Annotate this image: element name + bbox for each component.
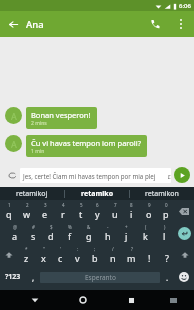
button[interactable]: Jes, certe! Ĉiam mi havas tempon por mia… [20, 168, 171, 183]
button[interactable]: 9 [140, 200, 157, 222]
button[interactable]: 5 [72, 200, 89, 222]
button[interactable]: Home [73, 290, 93, 310]
button[interactable]: : [69, 244, 86, 266]
button[interactable]: Backspace [174, 200, 194, 222]
staticText: retamikon [145, 189, 179, 199]
staticText: ) [164, 224, 166, 230]
staticText: w [23, 208, 31, 220]
staticText: y [95, 208, 100, 220]
button[interactable]: Call [142, 11, 168, 37]
button[interactable]: / [104, 244, 122, 266]
staticText: c [58, 252, 63, 264]
button[interactable]: Recents [121, 290, 141, 310]
staticText: e [42, 208, 48, 220]
staticText: * [25, 246, 28, 252]
button[interactable]: $ [42, 222, 60, 244]
button[interactable]: Bonan vesperon! [26, 107, 97, 129]
staticText: 7 [114, 202, 117, 208]
button[interactable]: " [35, 244, 52, 266]
staticText: l [163, 230, 166, 242]
button[interactable]: Back [0, 11, 26, 37]
staticText: 5 [80, 202, 83, 208]
button[interactable]: 1 [0, 200, 18, 222]
button[interactable]: ; [86, 244, 104, 266]
button[interactable]: 7 [106, 200, 123, 222]
button[interactable]: retamikon [130, 187, 194, 200]
staticText: t [79, 208, 83, 220]
button[interactable]: Space [40, 272, 160, 283]
staticText: 8 [130, 202, 133, 208]
button[interactable]: Send [174, 167, 190, 183]
staticText: n [110, 252, 116, 264]
button[interactable]: ' [52, 244, 69, 266]
staticText: b [92, 252, 98, 264]
staticText: ?123 [5, 272, 21, 282]
staticText: 0 [165, 202, 168, 208]
staticText: 1 [8, 202, 11, 208]
staticText: @ [13, 224, 18, 230]
button[interactable]: 3 [36, 200, 54, 222]
button[interactable]: 0 [157, 200, 174, 222]
staticText: Bonan vesperon! [31, 110, 91, 120]
staticText: q [6, 208, 12, 220]
button[interactable]: More options [168, 11, 194, 37]
button[interactable]: % [60, 222, 79, 244]
staticText: . [166, 272, 169, 283]
button[interactable]: * [18, 244, 35, 266]
button[interactable]: 4 [54, 200, 72, 222]
button[interactable]: @ [6, 222, 24, 244]
button[interactable]: 6 [89, 200, 106, 222]
button[interactable]: + [117, 222, 136, 244]
button[interactable]: , [26, 266, 40, 288]
button[interactable]: ? [158, 244, 176, 266]
staticText: Ĉu vi havas tempon iom paroli? [31, 138, 141, 148]
button[interactable]: Ĉu vi havas tempon iom paroli? [26, 135, 147, 157]
button[interactable]: retamikoj [0, 187, 64, 200]
button[interactable]: Switch keyboard [163, 290, 183, 310]
button[interactable]: ) [155, 222, 174, 244]
staticText: s [31, 230, 36, 242]
staticText: x [41, 252, 46, 264]
staticText: d [48, 230, 54, 242]
button[interactable]: Back [25, 290, 45, 310]
staticText: k [143, 230, 148, 242]
button[interactable]: & [79, 222, 98, 244]
staticText: % [68, 224, 72, 230]
button[interactable]: ?123 [0, 266, 26, 288]
staticText: o [146, 208, 152, 220]
staticText: " [43, 246, 45, 252]
staticText: r [61, 208, 65, 220]
staticText: A [11, 138, 17, 150]
staticText: Ana [26, 18, 44, 31]
button[interactable]: ! [140, 244, 158, 266]
button[interactable]: ? [122, 244, 140, 266]
button[interactable]: 2 [18, 200, 36, 222]
button[interactable]: Attach [4, 167, 20, 183]
button[interactable]: # [24, 222, 42, 244]
button[interactable]: - [98, 222, 117, 244]
staticText: ? [165, 252, 169, 264]
button[interactable]: 8 [123, 200, 140, 222]
button[interactable]: . [160, 266, 174, 288]
staticText: 6 [96, 202, 99, 208]
button[interactable]: Shift [0, 244, 18, 266]
staticText: 2 mins [31, 120, 47, 127]
staticText: a [12, 230, 18, 242]
staticText: ! [148, 252, 151, 264]
staticText: 2 [26, 202, 29, 208]
button[interactable]: Emoji [174, 266, 194, 288]
staticText: A [11, 110, 17, 122]
button[interactable]: ( [136, 222, 155, 244]
staticText: v [75, 252, 80, 264]
staticText: j [125, 230, 128, 242]
staticText: u [112, 208, 118, 220]
staticText: retamikoj [16, 189, 48, 199]
staticText: ( [145, 224, 147, 230]
button[interactable]: Enter [174, 222, 194, 244]
button[interactable]: retamiko [65, 187, 129, 200]
staticText: retamiko [81, 189, 114, 199]
button[interactable]: Shift [176, 244, 194, 266]
staticText: Jes, certe! Ĉiam mi havas tempon por mia… [23, 172, 168, 180]
staticText: z [24, 252, 29, 264]
staticText: 4 [62, 202, 65, 208]
